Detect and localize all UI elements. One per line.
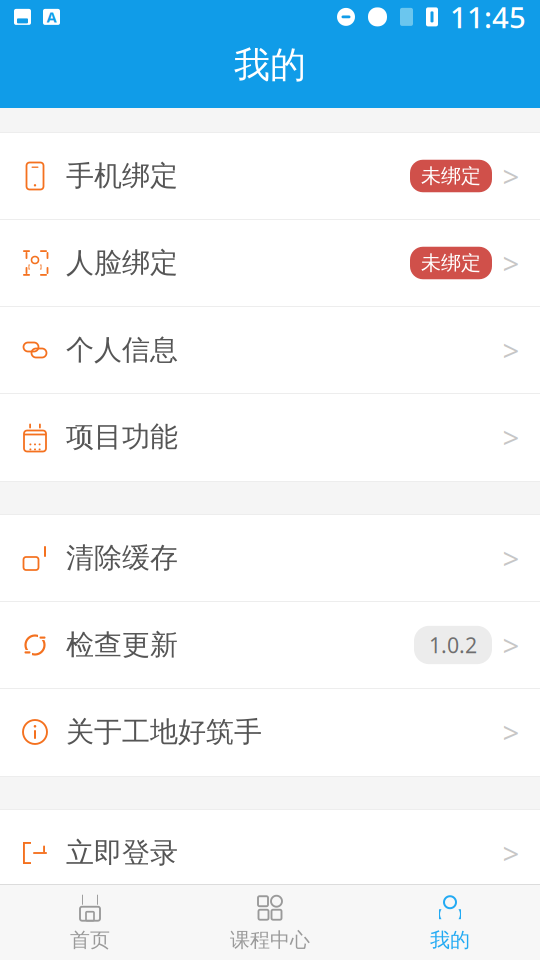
staticText: 手机绑定: [66, 159, 178, 193]
staticText: 个人信息: [66, 333, 178, 367]
staticText: 项目功能: [66, 420, 178, 454]
staticText: 我的: [430, 928, 470, 952]
staticText: 11:45: [450, 0, 526, 36]
staticText: 清除缓存: [66, 541, 178, 575]
staticText: >: [502, 538, 519, 577]
button[interactable]: 课程中心: [180, 885, 360, 960]
staticText: >: [502, 833, 519, 872]
staticText: >: [502, 417, 519, 456]
button[interactable]: 手机绑定: [0, 133, 540, 220]
staticText: 未绑定: [421, 251, 481, 275]
button[interactable]: 个人信息: [0, 307, 540, 394]
staticText: 未绑定: [421, 164, 481, 188]
button[interactable]: 人脸绑定: [0, 220, 540, 307]
staticText: 人脸绑定: [66, 246, 178, 280]
staticText: 课程中心: [230, 928, 310, 952]
staticText: >: [502, 712, 519, 751]
staticText: 我的: [234, 43, 306, 87]
staticText: >: [502, 156, 519, 195]
button[interactable]: 立即登录: [0, 810, 540, 897]
staticText: >: [502, 243, 519, 282]
staticText: 首页: [70, 928, 110, 952]
staticText: >: [502, 625, 519, 664]
button[interactable]: 检查更新: [0, 602, 540, 689]
button[interactable]: 项目功能: [0, 394, 540, 481]
staticText: A: [46, 7, 56, 27]
button[interactable]: 首页: [0, 885, 180, 960]
staticText: >: [502, 330, 519, 369]
button[interactable]: 我的: [360, 885, 540, 960]
staticText: 1.0.2: [429, 631, 477, 659]
button[interactable]: 关于工地好筑手: [0, 689, 540, 776]
staticText: 立即登录: [66, 836, 178, 870]
staticText: 检查更新: [66, 628, 178, 662]
button[interactable]: 清除缓存: [0, 515, 540, 602]
staticText: 关于工地好筑手: [66, 715, 262, 749]
